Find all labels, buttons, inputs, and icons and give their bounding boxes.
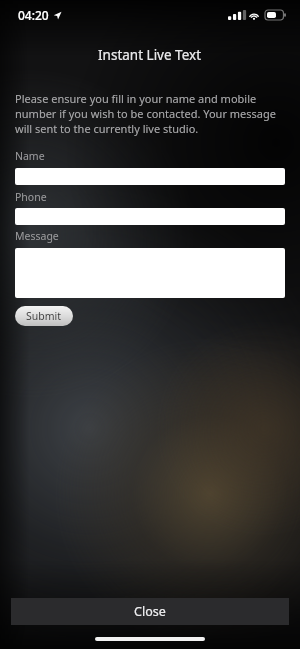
staticText: 04:20 bbox=[18, 7, 49, 23]
staticText: Please ensure you fill in your name and … bbox=[15, 91, 285, 136]
button[interactable] bbox=[15, 208, 285, 225]
other: Home indicator bbox=[95, 637, 205, 641]
staticText: Message bbox=[15, 229, 59, 243]
staticText: Close bbox=[134, 603, 166, 620]
staticText: Phone bbox=[15, 190, 47, 204]
button[interactable] bbox=[15, 168, 285, 185]
staticText: Submit bbox=[26, 309, 62, 323]
button[interactable]: Close bbox=[11, 598, 289, 625]
staticText: Instant Live Text bbox=[98, 46, 202, 64]
button[interactable]: Submit bbox=[15, 306, 73, 326]
staticText: Name bbox=[15, 149, 45, 163]
